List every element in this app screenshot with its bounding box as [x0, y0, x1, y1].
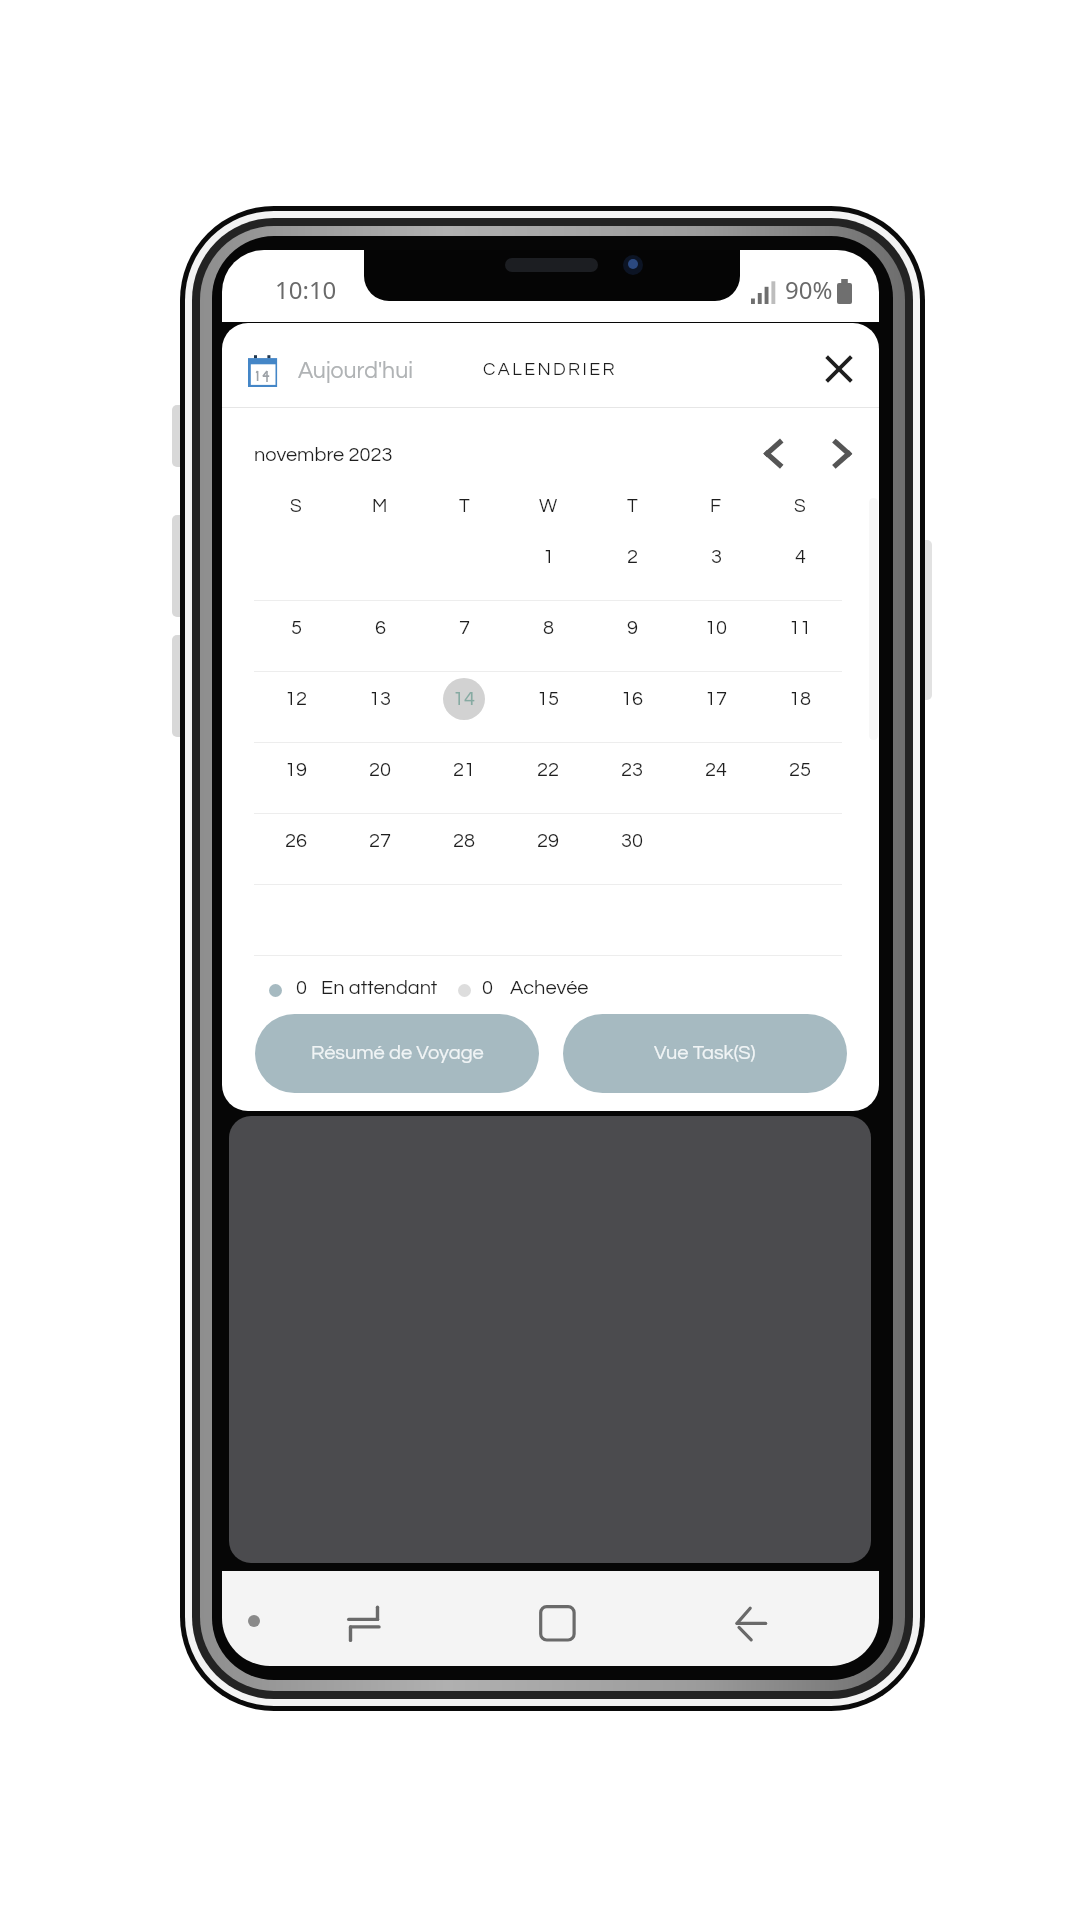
- staticText: S: [290, 496, 302, 516]
- button[interactable]: 27: [338, 815, 422, 867]
- staticText: 90%: [785, 273, 833, 306]
- staticText: 22: [537, 760, 559, 781]
- staticText: Aujourd'hui: [298, 359, 413, 383]
- button[interactable]: 9: [590, 602, 674, 654]
- staticText: F: [710, 496, 722, 516]
- button[interactable]: Fermer: [815, 345, 863, 393]
- button[interactable]: 23: [590, 744, 674, 796]
- button[interactable]: Mois suivant: [818, 430, 866, 478]
- button[interactable]: 21: [422, 744, 506, 796]
- button[interactable]: 3: [674, 531, 758, 583]
- staticText: Résumé de Voyage: [311, 1043, 484, 1064]
- button[interactable]: 26: [254, 815, 338, 867]
- staticText: 0: [482, 978, 493, 999]
- staticText: 28: [453, 831, 475, 852]
- button[interactable]: 30: [590, 815, 674, 867]
- staticText: 24: [705, 760, 727, 781]
- staticText: 21: [453, 760, 475, 781]
- staticText: 13: [369, 689, 391, 710]
- staticText: 12: [285, 689, 307, 710]
- button[interactable]: 7: [422, 602, 506, 654]
- button[interactable]: 28: [422, 815, 506, 867]
- button[interactable]: 1: [506, 531, 590, 583]
- button[interactable]: 8: [506, 602, 590, 654]
- staticText: 25: [789, 760, 811, 781]
- button[interactable]: 12: [254, 673, 338, 725]
- staticText: Achevée: [510, 978, 589, 999]
- button[interactable]: 2: [590, 531, 674, 583]
- staticText: 3: [711, 547, 722, 568]
- staticText: 2: [627, 547, 638, 568]
- staticText: T: [459, 496, 470, 516]
- button[interactable]: Mois précédent: [749, 430, 797, 478]
- button[interactable]: 25: [758, 744, 842, 796]
- button[interactable]: 15: [506, 673, 590, 725]
- button[interactable]: 11: [758, 602, 842, 654]
- staticText: 19: [285, 760, 307, 781]
- staticText: 30: [621, 831, 643, 852]
- button[interactable]: 18: [758, 673, 842, 725]
- button[interactable]: 16: [590, 673, 674, 725]
- button[interactable]: Aperçu: [326, 1585, 386, 1653]
- staticText: CALENDRIER: [483, 360, 618, 379]
- staticText: M: [372, 496, 388, 516]
- button[interactable]: 22: [506, 744, 590, 796]
- staticText: 20: [369, 760, 391, 781]
- button[interactable]: Aujourd'hui: [248, 329, 413, 413]
- staticText: 29: [537, 831, 559, 852]
- button[interactable]: 24: [674, 744, 758, 796]
- staticText: 23: [621, 760, 643, 781]
- staticText: novembre 2023: [254, 445, 393, 466]
- button[interactable]: 19: [254, 744, 338, 796]
- button[interactable]: Retour: [712, 1585, 772, 1653]
- staticText: 10: [705, 618, 727, 639]
- staticText: 10:10: [275, 273, 337, 306]
- button[interactable]: 20: [338, 744, 422, 796]
- staticText: 26: [285, 831, 307, 852]
- button[interactable]: 14: [422, 673, 506, 725]
- button[interactable]: Résumé de Voyage: [255, 1014, 539, 1093]
- button[interactable]: Vue Task(S): [563, 1014, 847, 1093]
- staticText: 9: [627, 618, 638, 639]
- staticText: 7: [459, 618, 470, 639]
- button[interactable]: Accueil: [518, 1585, 578, 1653]
- staticText: 27: [369, 831, 391, 852]
- staticText: 17: [705, 689, 727, 710]
- staticText: En attendant: [321, 978, 438, 999]
- staticText: T: [627, 496, 638, 516]
- button[interactable]: 6: [338, 602, 422, 654]
- staticText: 11: [789, 618, 811, 639]
- staticText: 14: [453, 689, 475, 710]
- staticText: 1: [543, 547, 554, 568]
- staticText: 15: [537, 689, 559, 710]
- button[interactable]: 4: [758, 531, 842, 583]
- button[interactable]: 13: [338, 673, 422, 725]
- staticText: Vue Task(S): [654, 1043, 756, 1064]
- staticText: 4: [795, 547, 806, 568]
- button[interactable]: 10: [674, 602, 758, 654]
- staticText: 16: [621, 689, 643, 710]
- staticText: 0: [296, 978, 307, 999]
- staticText: S: [794, 496, 806, 516]
- staticText: W: [539, 496, 558, 516]
- button[interactable]: 5: [254, 602, 338, 654]
- staticText: 18: [789, 689, 811, 710]
- staticText: 5: [291, 618, 302, 639]
- staticText: 6: [375, 618, 386, 639]
- button[interactable]: 17: [674, 673, 758, 725]
- button[interactable]: 29: [506, 815, 590, 867]
- staticText: 8: [543, 618, 554, 639]
